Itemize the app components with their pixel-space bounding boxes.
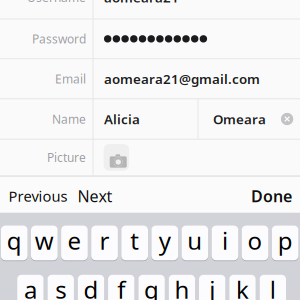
button[interactable]: f [108, 275, 135, 300]
button[interactable]: k [229, 275, 256, 300]
button[interactable]: j [199, 275, 225, 300]
button[interactable]: r [91, 226, 118, 260]
button[interactable]: i [212, 226, 238, 260]
button[interactable]: u [181, 226, 208, 260]
staticText: f [117, 274, 125, 300]
staticText: k [236, 274, 249, 300]
button[interactable]: Next [74, 179, 115, 214]
staticText: u [187, 224, 202, 256]
staticText: Alicia [104, 110, 140, 128]
button[interactable]: aomeara21@gmail.com [104, 64, 284, 94]
button[interactable]: w [31, 226, 58, 260]
staticText: aomeara21 [104, 0, 179, 6]
staticText: t [130, 224, 139, 256]
staticText: s [55, 274, 66, 300]
button[interactable]: Done [248, 179, 295, 214]
staticText: l [270, 274, 276, 300]
button[interactable]: Previous [0, 179, 74, 214]
staticText: e [67, 224, 81, 256]
button[interactable]: Alicia [104, 104, 284, 134]
button[interactable]: Choose picture [104, 144, 129, 171]
staticText: g [144, 274, 159, 300]
button[interactable]: o [242, 226, 268, 260]
staticText: Username [27, 0, 86, 5]
staticText: h [174, 274, 189, 300]
staticText: i [222, 224, 228, 256]
button[interactable]: Omeara [213, 99, 300, 139]
staticText: Omeara [213, 110, 266, 128]
staticText: Email [55, 71, 86, 87]
staticText: a [24, 274, 37, 300]
button[interactable]: y [151, 226, 178, 260]
button[interactable]: l [260, 275, 286, 300]
staticText: Next [77, 185, 112, 207]
staticText: Password [32, 31, 86, 47]
button[interactable]: q [1, 226, 28, 260]
staticText: Name [52, 111, 86, 127]
staticText: Picture [47, 149, 86, 165]
button[interactable]: aomeara21 [104, 0, 284, 12]
button[interactable] [104, 24, 284, 54]
button[interactable]: a [17, 275, 44, 300]
button[interactable]: t [121, 226, 148, 260]
staticText: j [209, 274, 215, 300]
button[interactable]: Clear text [276, 108, 298, 130]
staticText: Done [251, 185, 292, 207]
staticText: Previous [8, 186, 67, 206]
staticText: p [278, 224, 293, 256]
button[interactable]: g [138, 275, 165, 300]
staticText: r [100, 224, 110, 256]
staticText: q [7, 224, 22, 256]
staticText: o [248, 224, 263, 256]
button[interactable]: e [61, 226, 88, 260]
button[interactable]: s [47, 275, 74, 300]
button[interactable]: p [272, 226, 298, 260]
staticText: w [35, 224, 54, 256]
staticText: d [83, 274, 98, 300]
staticText: aomeara21@gmail.com [104, 70, 260, 88]
button[interactable]: d [78, 275, 104, 300]
button[interactable]: h [169, 275, 195, 300]
staticText: y [159, 224, 171, 256]
